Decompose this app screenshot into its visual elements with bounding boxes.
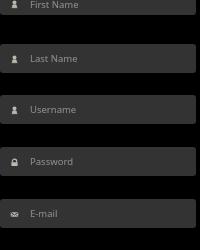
staticText: E-mail — [30, 207, 58, 220]
button[interactable]: Password — [0, 147, 196, 176]
staticText: Password — [30, 155, 73, 168]
staticText: Last Name — [30, 52, 78, 65]
button[interactable]: First Name — [0, 0, 196, 15]
button[interactable]: E-mail — [0, 199, 196, 228]
button[interactable]: Username — [0, 95, 196, 124]
staticText: First Name — [30, 0, 79, 11]
staticText: Username — [30, 103, 77, 116]
button[interactable]: Last Name — [0, 44, 196, 73]
